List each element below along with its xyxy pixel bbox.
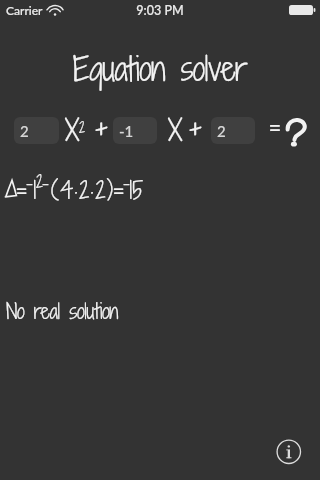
staticText: X xyxy=(65,109,80,151)
staticText: 2 xyxy=(79,117,86,137)
staticText: 2 xyxy=(217,122,226,140)
staticText: 15 xyxy=(129,172,144,207)
staticText: – xyxy=(123,172,130,194)
button[interactable]: Info xyxy=(275,438,303,466)
staticText: 2 xyxy=(20,122,29,140)
button[interactable]: 2 xyxy=(14,117,59,144)
staticText: 9:03 PM xyxy=(0,3,320,18)
staticText: + xyxy=(188,107,204,149)
staticText: = xyxy=(14,172,28,207)
staticText: Carrier xyxy=(6,3,43,17)
staticText: = xyxy=(111,172,125,207)
button[interactable]: -1 xyxy=(113,117,157,144)
staticText: (4·2·2) xyxy=(51,172,115,207)
staticText: No real solution xyxy=(6,297,119,326)
staticText: Equation solver xyxy=(0,45,320,91)
button[interactable]: 2 xyxy=(211,117,255,144)
staticText: X xyxy=(168,109,183,151)
staticText: -1 xyxy=(119,122,134,140)
staticText: 1 xyxy=(33,172,37,207)
staticText: 2 xyxy=(36,170,44,193)
staticText: – xyxy=(26,172,33,194)
staticText: = xyxy=(267,109,282,145)
staticText: – xyxy=(42,172,49,194)
staticText: + xyxy=(94,107,110,149)
